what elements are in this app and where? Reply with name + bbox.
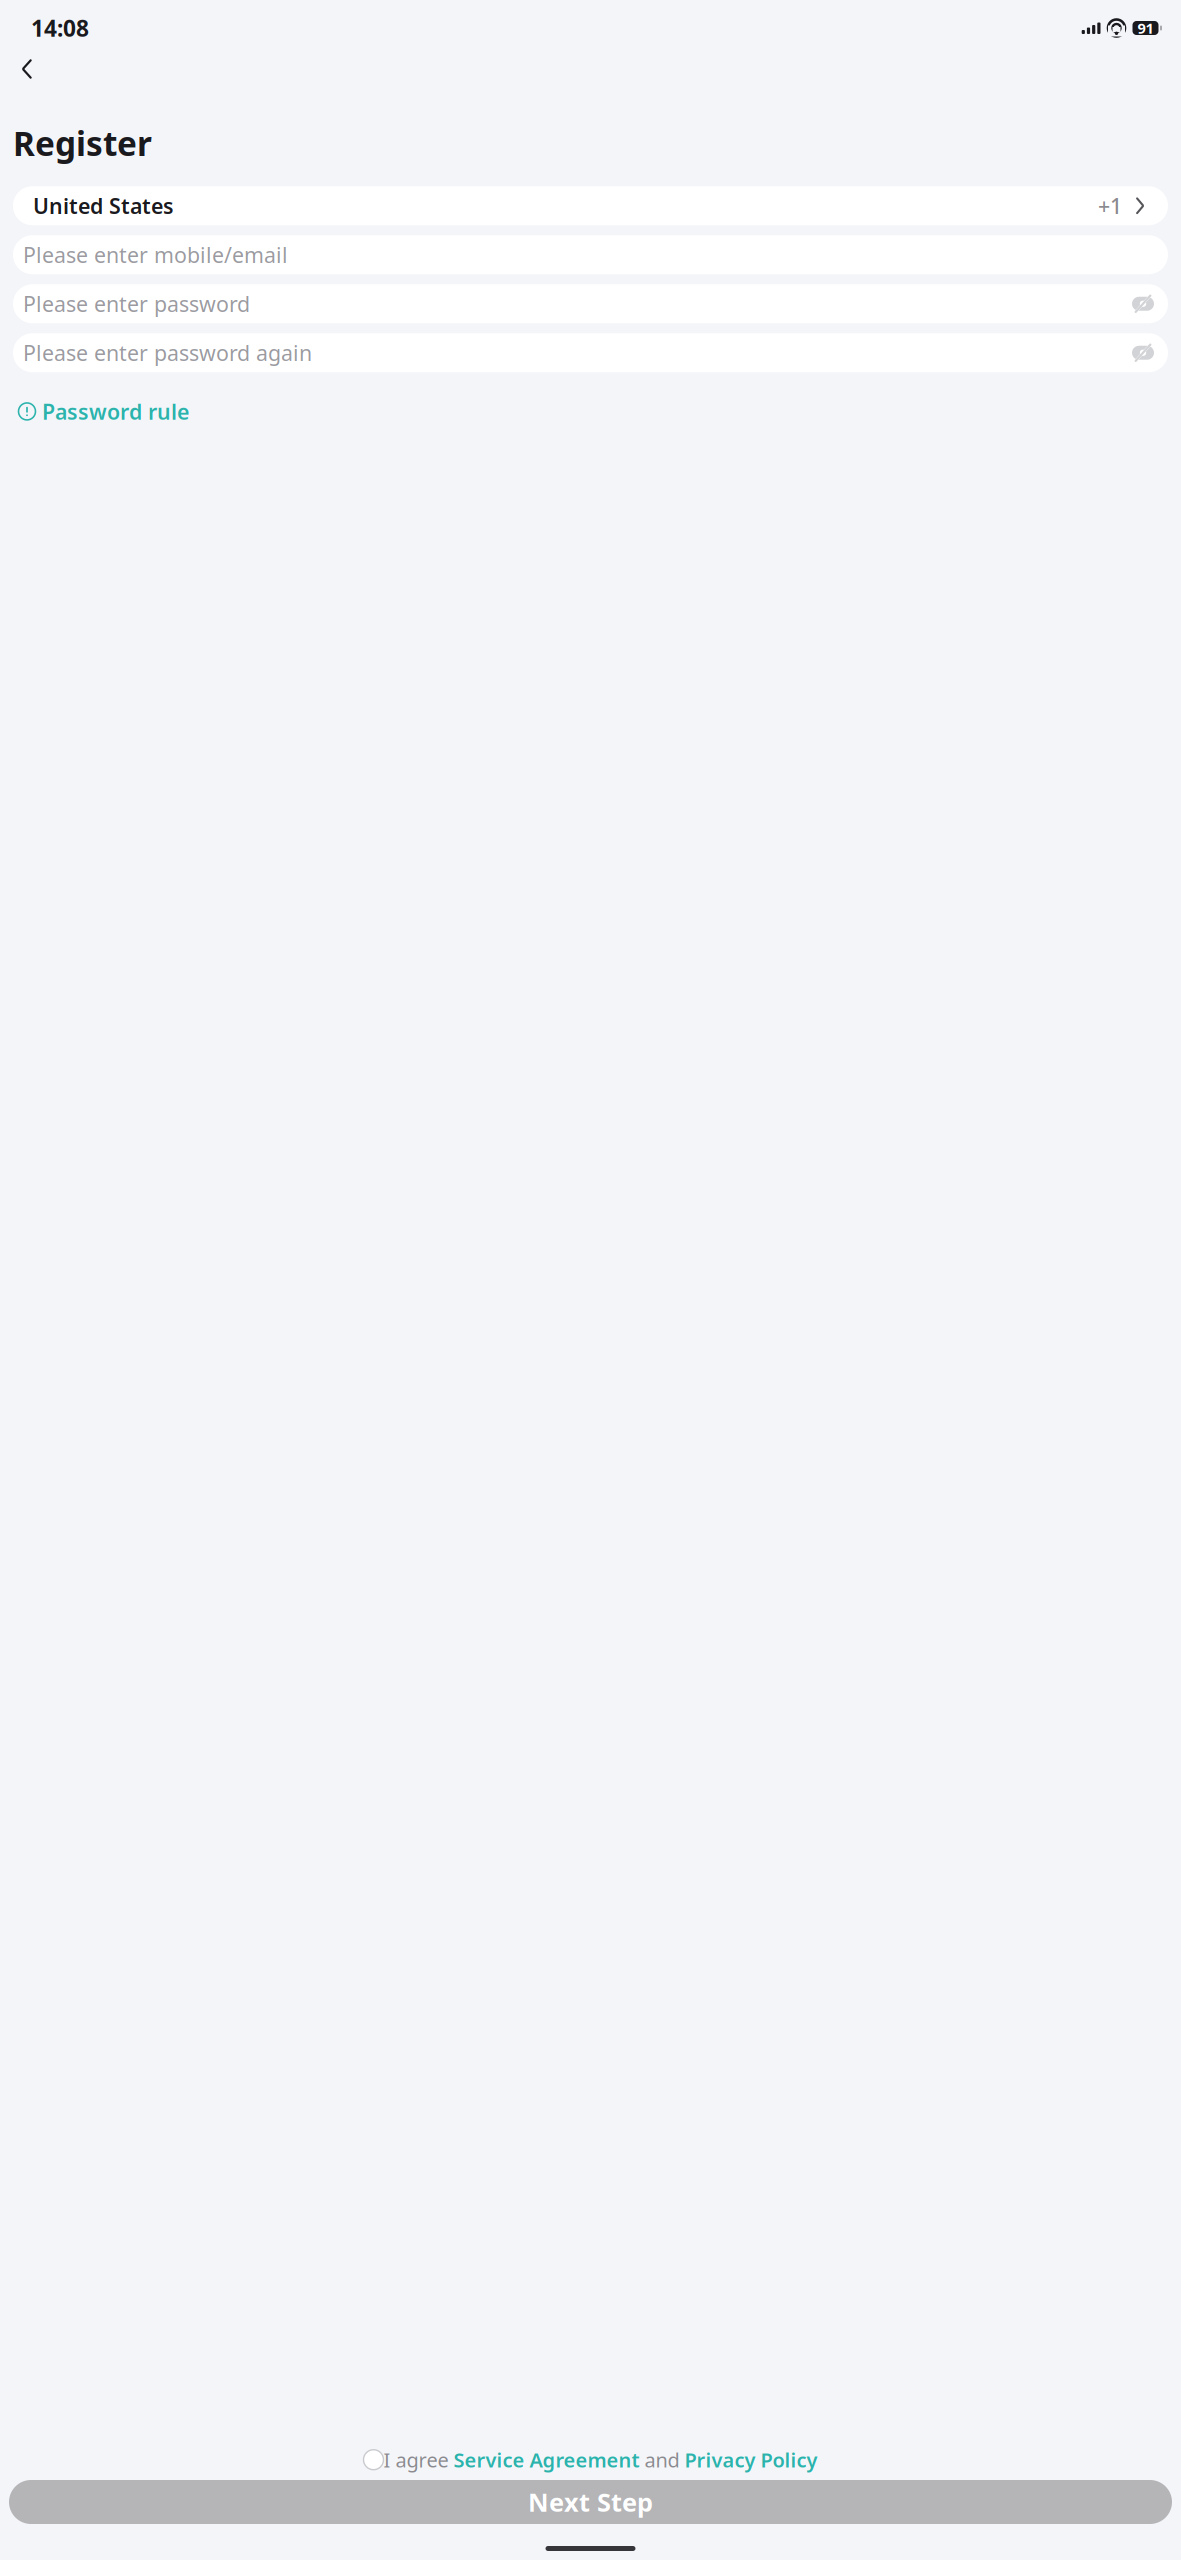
button[interactable]: Privacy Policy [684,2446,817,2473]
staticText: 91 [1137,18,1153,38]
staticText: Password rule [42,397,189,426]
button[interactable]: Password rule [18,391,189,432]
button[interactable]: I agree checkbox [363,2450,383,2470]
staticText: 14:08 [31,13,89,43]
button[interactable]: United States [13,186,1168,225]
button[interactable]: Service Agreement [453,2446,639,2473]
staticText: Register [13,121,152,165]
staticText: Please enter mobile/email [23,241,288,269]
staticText: and [639,2446,684,2473]
button[interactable]: Show password [1128,284,1158,323]
staticText: United States [33,192,174,220]
button[interactable]: Show password [1128,333,1158,372]
button[interactable]: Please enter mobile/email [13,235,1168,274]
staticText: Next Step [528,2485,653,2519]
staticText: I agree [383,2446,453,2473]
button[interactable]: Next Step [9,2480,1172,2524]
button[interactable]: Back [5,47,49,91]
staticText: Please enter password again [23,339,312,367]
staticText: Please enter password [23,290,250,318]
staticText: Service Agreement [453,2446,639,2473]
staticText: +1 [1098,192,1122,220]
staticText: Privacy Policy [684,2446,817,2473]
